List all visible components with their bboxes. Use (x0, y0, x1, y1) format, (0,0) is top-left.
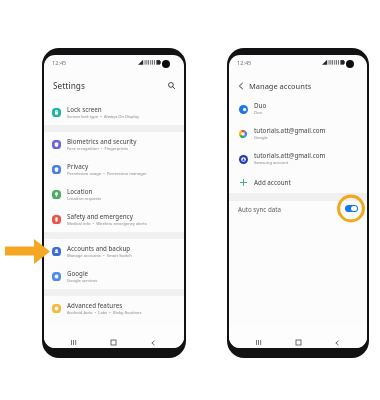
staticText: Auto sync data (238, 205, 281, 213)
button[interactable]: tutorials.att@gmail.com (229, 121, 367, 146)
button[interactable]: Location (44, 182, 184, 207)
staticText: Samsung account (254, 160, 289, 166)
staticText: tutorials.att@gmail.com (254, 151, 326, 159)
staticText: Manage accounts (249, 81, 312, 91)
button[interactable]: Back (146, 336, 159, 348)
staticText: Screen lock type • Always On Display (67, 114, 140, 120)
staticText: Location requests (67, 196, 102, 202)
button[interactable]: Advanced features (44, 296, 184, 321)
staticText: 12:45 (237, 59, 252, 67)
button[interactable]: tutorials.att@gmail.com (229, 146, 367, 171)
button[interactable]: Google (44, 264, 184, 289)
button[interactable]: Back (330, 336, 343, 348)
staticText: Permission usage • Permission manager (67, 171, 147, 177)
button[interactable]: Privacy (44, 157, 184, 182)
staticText: Google services (67, 278, 98, 284)
staticText: 12:45 (52, 59, 67, 67)
staticText: Location (67, 187, 93, 195)
button[interactable]: Back (235, 80, 246, 91)
staticText: Add account (254, 178, 291, 186)
button[interactable]: Recents (67, 336, 80, 348)
button[interactable]: Biometrics and security (44, 132, 184, 157)
button[interactable]: Home (292, 336, 305, 348)
staticText: Privacy (67, 162, 89, 170)
staticText: Biometrics and security (67, 137, 137, 145)
button[interactable]: Auto sync data (229, 201, 367, 216)
staticText: Android Auto • Labs • Bixby Routines (67, 310, 142, 316)
button[interactable]: Safety and emergency (44, 207, 184, 232)
staticText: Lock screen (67, 105, 102, 113)
button[interactable]: Search (165, 79, 178, 92)
button[interactable]: Add account (229, 171, 367, 193)
button[interactable]: Home (107, 336, 120, 348)
staticText: Settings (53, 80, 85, 91)
staticText: Safety and emergency (67, 212, 133, 220)
staticText: Accounts and backup (67, 244, 131, 252)
staticText: Duo (254, 110, 262, 116)
staticText: Medical info • Wireless emergency alerts (67, 221, 147, 227)
staticText: Manage accounts • Smart Switch (67, 253, 132, 259)
staticText: Duo (254, 101, 267, 109)
button[interactable]: Recents (252, 336, 265, 348)
button[interactable]: Duo (229, 96, 367, 121)
staticText: Google (254, 135, 268, 141)
staticText: Google (67, 269, 89, 277)
button[interactable]: Auto sync data toggle (337, 201, 365, 216)
staticText: Advanced features (67, 301, 123, 309)
staticText: tutorials.att@gmail.com (254, 126, 326, 134)
button[interactable]: Lock screen (44, 100, 184, 125)
staticText: Face recognition • Fingerprints (67, 146, 129, 152)
button[interactable]: Accounts and backup (44, 239, 184, 264)
